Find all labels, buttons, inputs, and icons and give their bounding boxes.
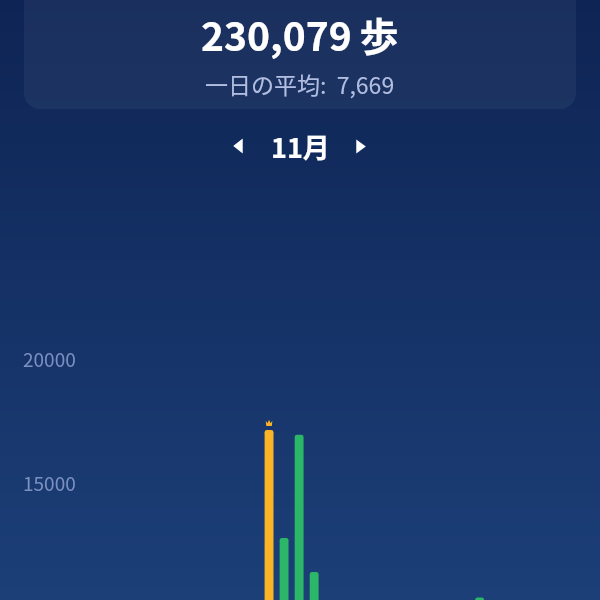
staticText: 一日の平均: 7,669 — [205, 67, 395, 100]
button[interactable]: 11月 — [260, 125, 340, 167]
staticText: 20000 — [23, 345, 76, 373]
button[interactable]: Previous month — [217, 125, 259, 167]
staticText: 230,079 歩 — [201, 6, 399, 62]
button[interactable]: 230,079 歩 — [24, 0, 576, 109]
staticText: 15000 — [23, 469, 76, 497]
staticText: 11月 — [271, 127, 330, 166]
button[interactable]: Next month — [340, 125, 382, 167]
